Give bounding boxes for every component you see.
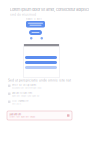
staticText: antium totam rem [12,92,32,95]
staticText: illo inventore [12,100,28,103]
staticText: aperiam eaque ipsa quae ab [12,95,39,97]
staticText: sed do eiusmod [10,12,36,16]
staticText: error sit voluptatem [12,84,36,87]
staticText: Sed ut perspiciatis unde omnis iste nat [8,79,71,82]
staticText: accusantium doloremque laud [12,87,41,89]
staticText: veritatis [12,103,21,105]
staticText: Lorem ipsum dolor sit amet, consectetur … [10,7,89,12]
staticText: Laudantium [9,113,21,116]
staticText: totam rem aperiam eaque [9,115,35,118]
staticText: incididunt ut labore [26,18,42,20]
